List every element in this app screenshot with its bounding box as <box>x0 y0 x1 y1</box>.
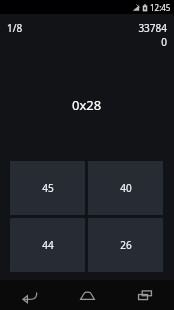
staticText: 44 <box>42 238 54 252</box>
staticText: 12:45 <box>150 2 171 13</box>
staticText: 45 <box>42 181 54 195</box>
staticText: 40 <box>120 181 132 195</box>
button[interactable]: 44 <box>10 218 85 272</box>
button[interactable]: Home <box>58 280 116 310</box>
staticText: 1/8 <box>7 21 23 35</box>
staticText: 33784 <box>138 21 167 35</box>
button[interactable]: 40 <box>88 161 163 215</box>
staticText: 26 <box>120 238 132 252</box>
button[interactable]: 45 <box>10 161 85 215</box>
button[interactable]: 26 <box>88 218 163 272</box>
button[interactable]: Recent apps <box>116 280 174 310</box>
staticText: 0 <box>161 35 167 49</box>
button[interactable]: Back <box>0 280 58 310</box>
staticText: 0x28 <box>72 96 102 114</box>
